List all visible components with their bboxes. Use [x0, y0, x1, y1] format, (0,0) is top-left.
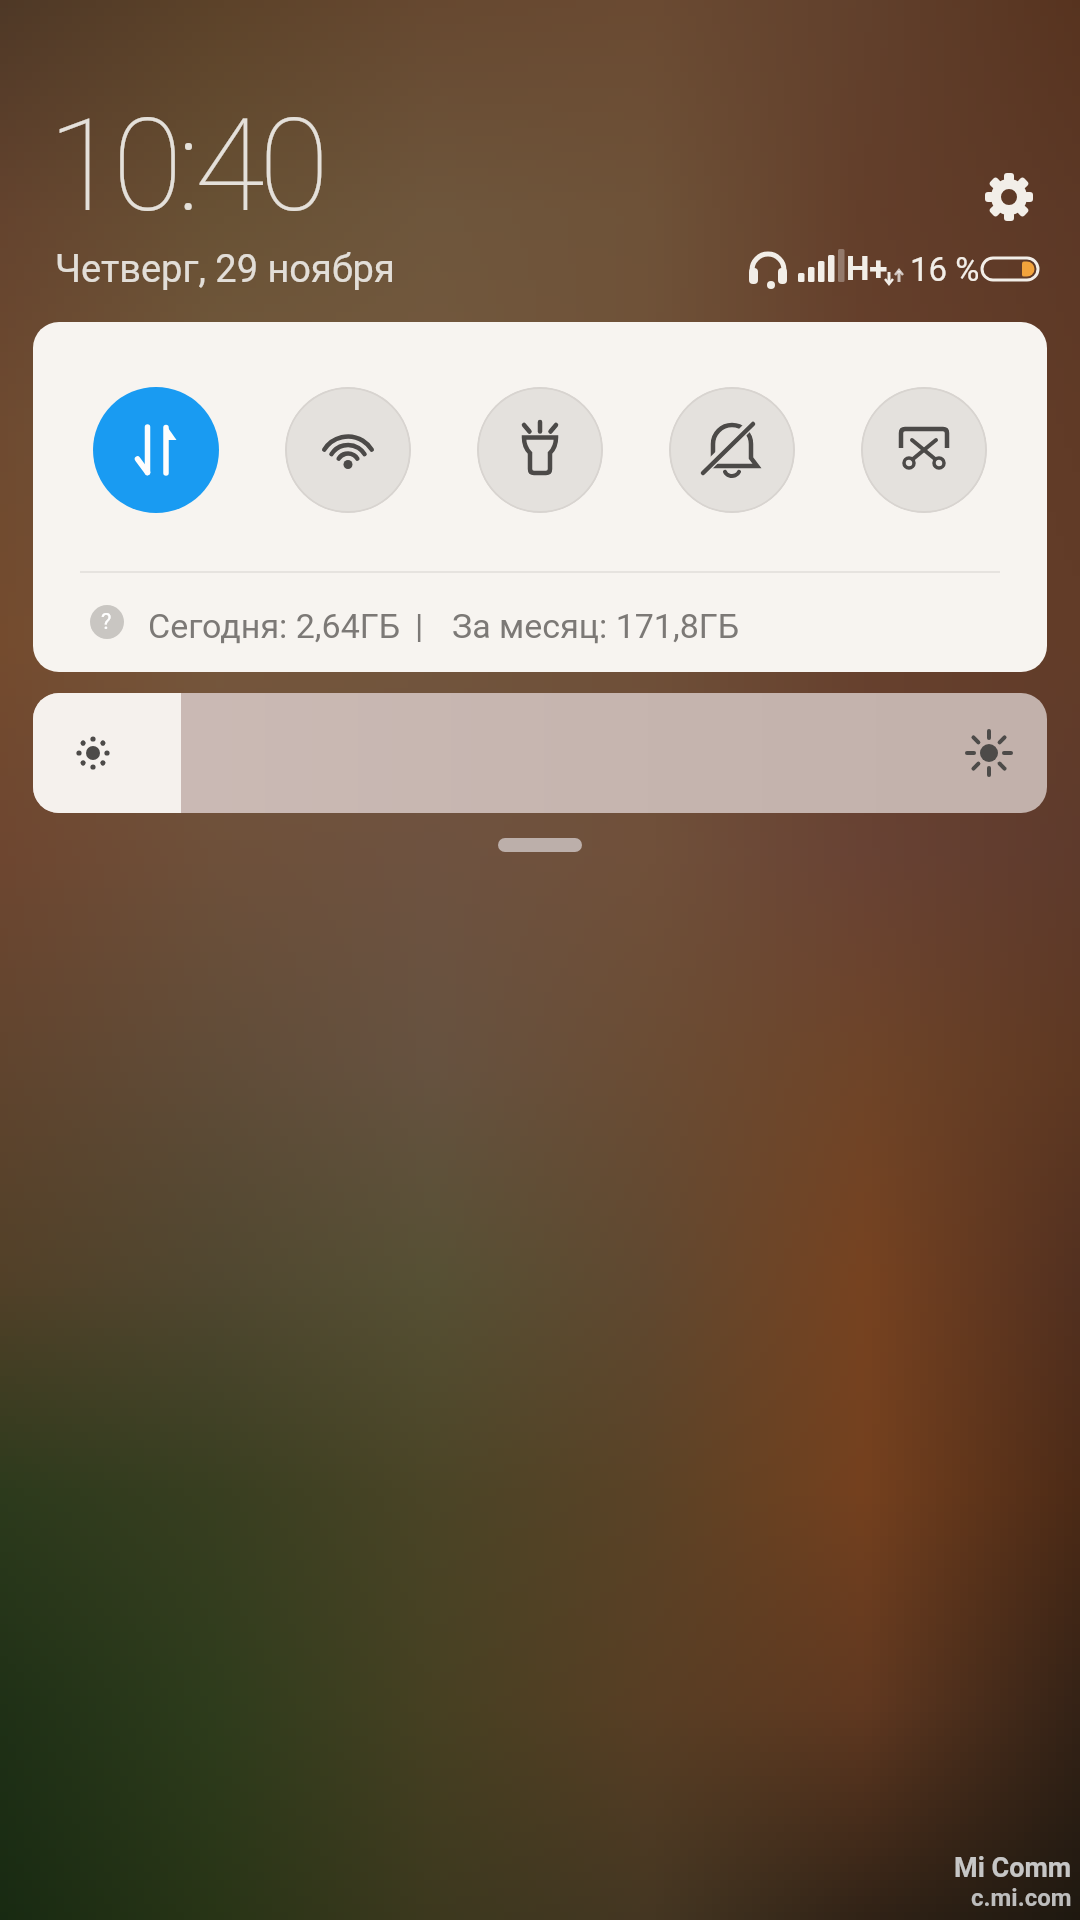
button[interactable] — [33, 693, 1047, 813]
staticText: | — [415, 606, 424, 646]
staticText: c.mi.com — [971, 1884, 1072, 1912]
staticText: 10:40 — [48, 91, 324, 241]
staticText: ? — [101, 609, 112, 635]
staticText: За месяц: 171,8ГБ — [452, 606, 740, 646]
staticText: Mi Comm — [954, 1852, 1072, 1884]
staticText: 16 % — [910, 250, 980, 289]
button[interactable] — [861, 387, 987, 513]
staticText: H+ — [846, 249, 888, 288]
button[interactable] — [285, 387, 411, 513]
staticText: Сегодня: 2,64ГБ — [148, 606, 401, 646]
button[interactable] — [93, 387, 219, 513]
button[interactable] — [669, 387, 795, 513]
staticText: Четверг, 29 ноября — [55, 247, 395, 292]
button[interactable] — [498, 838, 582, 852]
button[interactable] — [981, 169, 1037, 225]
button[interactable] — [477, 387, 603, 513]
